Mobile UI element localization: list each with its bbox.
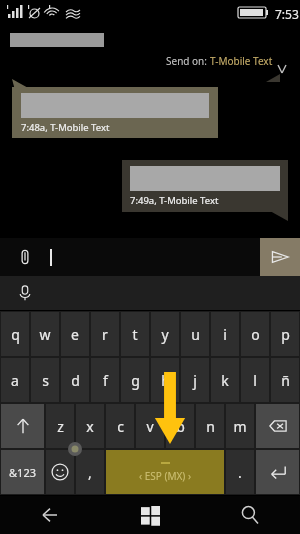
button[interactable]: j bbox=[181, 358, 209, 402]
button[interactable]: r bbox=[91, 312, 119, 356]
button[interactable]: c bbox=[106, 404, 134, 448]
button[interactable]: z bbox=[46, 404, 74, 448]
staticText: v bbox=[146, 417, 154, 436]
button[interactable]: v bbox=[136, 404, 164, 448]
button[interactable]: Emoji bbox=[46, 450, 74, 494]
button[interactable]: Back bbox=[0, 496, 100, 534]
button[interactable]: Space bbox=[106, 450, 224, 494]
staticText: , bbox=[88, 463, 92, 482]
staticText: . bbox=[238, 463, 242, 482]
staticText: a bbox=[11, 371, 19, 390]
button[interactable]: y bbox=[151, 312, 179, 356]
staticText: z bbox=[57, 417, 64, 436]
button[interactable]: t bbox=[121, 312, 149, 356]
staticText: g bbox=[131, 371, 140, 390]
staticText: e bbox=[71, 325, 79, 344]
button[interactable]: Enter bbox=[256, 450, 299, 494]
button[interactable]: d bbox=[61, 358, 89, 402]
staticText: h bbox=[161, 371, 170, 390]
button[interactable]: f bbox=[91, 358, 119, 402]
button[interactable]: Attach bbox=[8, 238, 42, 276]
button[interactable]: m bbox=[226, 404, 254, 448]
button[interactable]: p bbox=[271, 312, 299, 356]
staticText: u bbox=[191, 325, 200, 344]
staticText: 7:49a, T-Mobile Text bbox=[130, 194, 219, 207]
staticText: p bbox=[281, 325, 290, 344]
button[interactable]: Send bbox=[260, 238, 300, 276]
button[interactable]: g bbox=[121, 358, 149, 402]
button[interactable]: Backspace bbox=[256, 404, 299, 448]
button[interactable]: n bbox=[196, 404, 224, 448]
button[interactable]: ñ bbox=[271, 358, 299, 402]
button[interactable]: &123 bbox=[1, 450, 44, 494]
button[interactable]: b bbox=[166, 404, 194, 448]
staticText: j bbox=[193, 371, 197, 390]
button[interactable]: o bbox=[241, 312, 269, 356]
button[interactable]: Search bbox=[200, 496, 300, 534]
staticText: s bbox=[42, 371, 49, 390]
staticText: t bbox=[132, 325, 138, 344]
staticText: k bbox=[221, 371, 229, 390]
staticText: y bbox=[161, 325, 169, 344]
staticText: f bbox=[103, 371, 108, 390]
staticText: T-Mobile Text bbox=[210, 54, 273, 68]
staticText: o bbox=[251, 325, 260, 344]
staticText: 7:48a, T-Mobile Text bbox=[21, 121, 110, 134]
button[interactable]: i bbox=[211, 312, 239, 356]
button[interactable]: e bbox=[61, 312, 89, 356]
button[interactable]: w bbox=[31, 312, 59, 356]
button[interactable]: s bbox=[31, 358, 59, 402]
staticText: q bbox=[11, 325, 20, 344]
button[interactable]: k bbox=[211, 358, 239, 402]
button[interactable]: Shift bbox=[1, 404, 44, 448]
button[interactable]: a bbox=[1, 358, 29, 402]
button[interactable]: q bbox=[1, 312, 29, 356]
button[interactable]: 7:49a, T-Mobile Text bbox=[122, 160, 288, 212]
staticText: d bbox=[71, 371, 80, 390]
button[interactable]: x bbox=[76, 404, 104, 448]
staticText: x bbox=[86, 417, 94, 436]
button[interactable]: 7:48a, T-Mobile Text bbox=[12, 87, 218, 138]
staticText: b bbox=[176, 417, 185, 436]
button[interactable]: . bbox=[226, 450, 254, 494]
button[interactable]: Start bbox=[100, 496, 200, 534]
button[interactable]: Send on: bbox=[166, 54, 287, 68]
staticText: i bbox=[223, 325, 227, 344]
staticText: ñ bbox=[281, 371, 290, 390]
staticText: n bbox=[206, 417, 215, 436]
staticText: &123 bbox=[9, 465, 36, 480]
button[interactable]: l bbox=[241, 358, 269, 402]
staticText: 7:53 bbox=[275, 6, 299, 22]
staticText: c bbox=[117, 417, 124, 436]
button[interactable]: Voice input bbox=[8, 276, 42, 310]
staticText: Send on: bbox=[166, 54, 210, 68]
button[interactable]: , bbox=[76, 450, 104, 494]
staticText: l bbox=[253, 371, 257, 390]
staticText: ‹ ESP (MX) › bbox=[139, 469, 192, 483]
button[interactable]: u bbox=[181, 312, 209, 356]
staticText: m bbox=[233, 417, 247, 436]
button[interactable]: h bbox=[151, 358, 179, 402]
staticText: w bbox=[39, 325, 51, 344]
staticText: r bbox=[102, 325, 108, 344]
